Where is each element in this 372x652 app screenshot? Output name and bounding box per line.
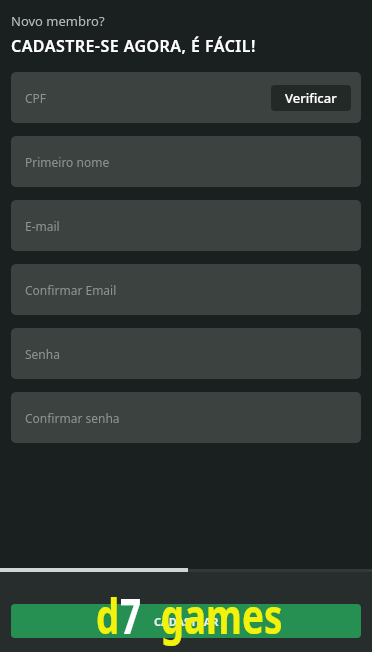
staticText: Senha	[25, 346, 60, 362]
button[interactable]: CADASTRAR	[11, 604, 361, 638]
staticText: Novo membro?	[11, 12, 105, 30]
staticText: Confirmar Email	[25, 282, 117, 298]
staticText: 7	[120, 583, 142, 649]
staticText: E-mail	[25, 218, 60, 234]
button[interactable]: Primeiro nome	[11, 136, 361, 187]
staticText: games	[161, 583, 283, 649]
staticText: Primeiro nome	[25, 154, 110, 170]
staticText: d	[96, 583, 120, 649]
staticText: Verificar	[285, 89, 337, 107]
staticText: CPF	[25, 90, 47, 106]
staticText: CADASTRE-SE AGORA, É FÁCIL!	[11, 35, 256, 57]
button[interactable]: Senha	[11, 328, 361, 379]
button[interactable]: CPF	[11, 72, 361, 123]
button[interactable]: Confirmar Email	[11, 264, 361, 315]
other: d7 games logo	[96, 583, 283, 649]
button[interactable]: Confirmar senha	[11, 392, 361, 443]
button[interactable]: Verificar	[271, 85, 351, 111]
button[interactable]: E-mail	[11, 200, 361, 251]
staticText: CADASTRAR	[154, 614, 219, 629]
staticText: Confirmar senha	[25, 410, 120, 426]
